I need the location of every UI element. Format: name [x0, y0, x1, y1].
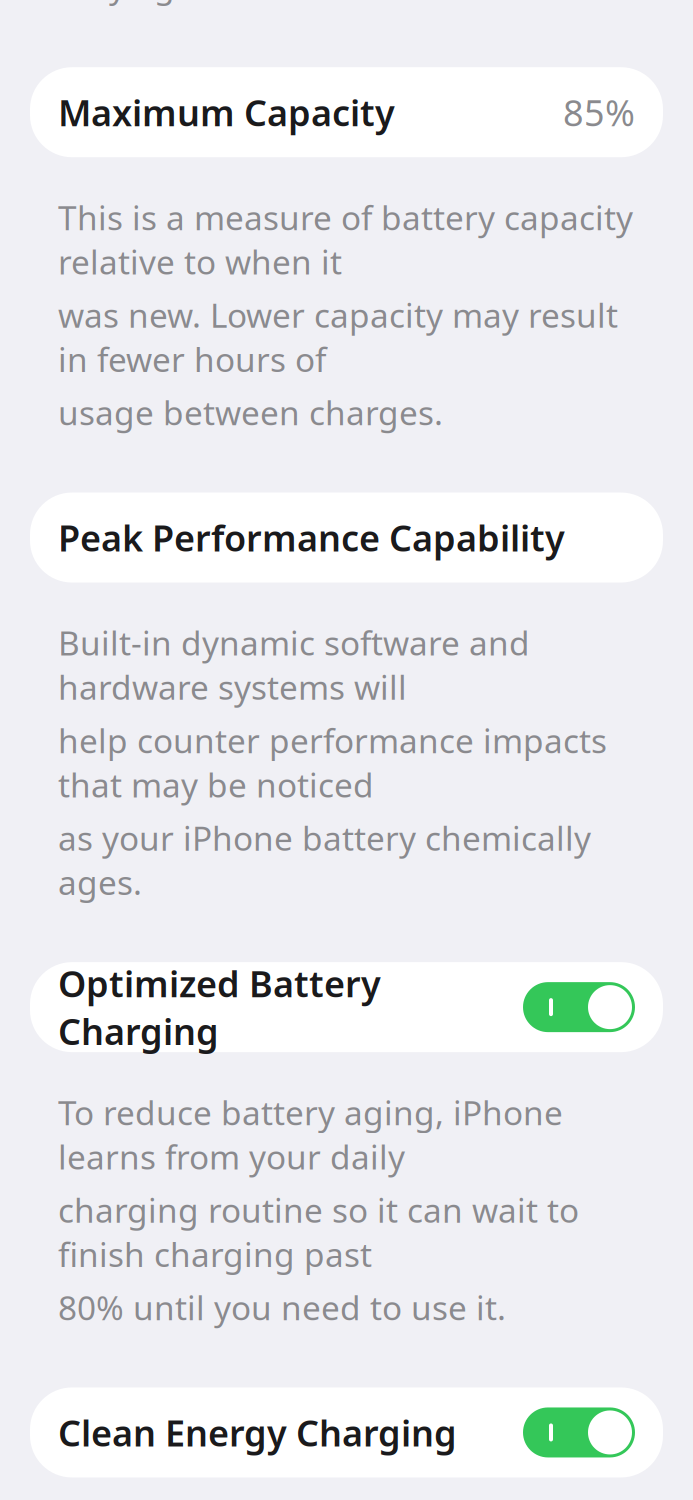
- staticText: was new. Lower capacity may result in fe…: [58, 293, 618, 381]
- staticText: Peak Performance Capability: [58, 514, 565, 561]
- staticText: Clean Energy Charging: [58, 1409, 457, 1456]
- staticText: Built-in dynamic software and hardware s…: [58, 620, 530, 709]
- staticText: usage between charges.: [58, 390, 443, 435]
- staticText: Maximum Capacity: [58, 88, 395, 136]
- staticText: they age.: [58, 0, 212, 7]
- button[interactable]: Peak Performance Capability: [0, 492, 693, 582]
- button[interactable]: Clean Energy Charging: [0, 1387, 693, 1477]
- staticText: as your iPhone battery chemically ages.: [58, 816, 591, 904]
- staticText: 80% until you need to use it.: [58, 1285, 506, 1329]
- staticText: 85%: [563, 88, 635, 136]
- staticText: help counter performance impacts that ma…: [58, 718, 607, 807]
- staticText: charging routine so it can wait to finis…: [58, 1188, 579, 1276]
- button[interactable]: Optimized Battery Charging: [0, 962, 693, 1052]
- button[interactable]: Maximum Capacity: [0, 67, 693, 157]
- staticText: This is a measure of battery capacity re…: [58, 195, 633, 284]
- staticText: Optimized Battery Charging: [58, 959, 381, 1055]
- staticText: To reduce battery aging, iPhone learns f…: [58, 1090, 563, 1179]
